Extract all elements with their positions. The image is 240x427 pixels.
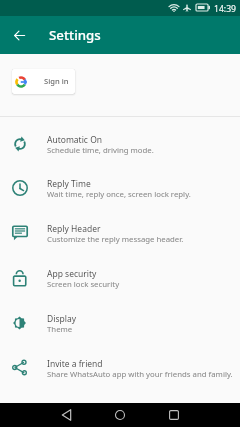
button[interactable]: Back	[1, 17, 37, 53]
staticText: Theme	[47, 324, 73, 335]
staticText: Reply Header	[47, 223, 101, 235]
staticText: Sign in	[44, 76, 69, 86]
button[interactable]: App security	[0, 256, 240, 301]
button[interactable]: Sign in	[12, 69, 75, 94]
staticText: Screen lock security	[47, 279, 120, 290]
button[interactable]: Automatic On	[0, 122, 240, 167]
button[interactable]: Reply Header	[0, 211, 240, 256]
button[interactable]: Back	[54, 403, 78, 427]
staticText: Wait time, reply once, screen lock reply…	[47, 189, 191, 200]
staticText: Customize the reply message header.	[47, 234, 184, 245]
button[interactable]: Reply Time	[0, 166, 240, 211]
staticText: Automatic On	[47, 134, 103, 146]
staticText: Invite a friend	[47, 358, 103, 370]
button[interactable]: Display	[0, 301, 240, 346]
staticText: Share WhatsAuto app with your friends an…	[47, 369, 233, 380]
staticText: Display	[47, 313, 76, 325]
staticText: Settings	[49, 26, 101, 44]
staticText: App security	[47, 268, 97, 280]
button[interactable]: Invite a friend	[0, 346, 240, 391]
staticText: 14:39	[214, 3, 236, 15]
button[interactable]: Recents	[162, 403, 186, 427]
button[interactable]: Home	[108, 403, 132, 427]
staticText: Schedule time, driving mode.	[47, 145, 154, 156]
staticText: Reply Time	[47, 178, 91, 190]
